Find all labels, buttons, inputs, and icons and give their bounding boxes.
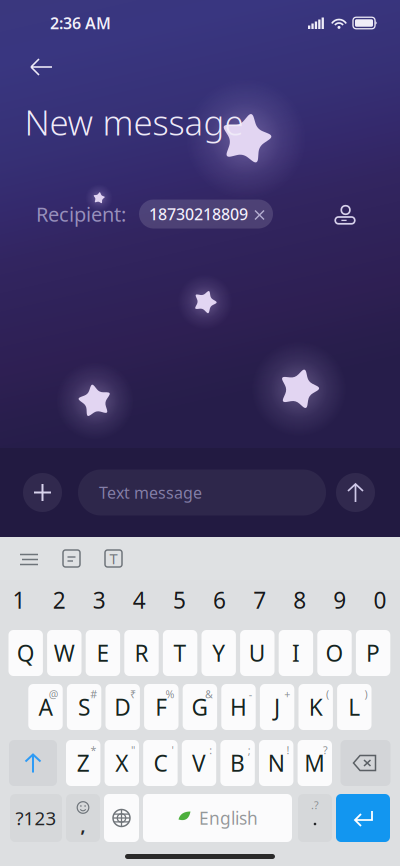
staticText: Y: [212, 638, 225, 668]
staticText: U: [249, 638, 266, 668]
button[interactable]: %: [144, 684, 178, 730]
button[interactable]: 6: [199, 580, 240, 620]
button[interactable]: .?: [298, 794, 332, 842]
staticText: X: [115, 748, 128, 778]
button[interactable]: 3: [79, 580, 119, 620]
staticText: H: [230, 692, 247, 722]
button[interactable]: Text formatting: [8, 541, 49, 575]
button[interactable]: :: [182, 740, 216, 786]
button[interactable]: !: [259, 740, 293, 786]
staticText: S: [78, 692, 90, 722]
button[interactable]: 1: [0, 580, 39, 620]
button[interactable]: Choose contact: [324, 192, 366, 236]
staticText: J: [274, 692, 280, 722]
button[interactable]: Add attachment: [23, 473, 62, 512]
staticText: ?: [323, 743, 328, 757]
button[interactable]: ': [143, 740, 178, 786]
button[interactable]: P: [356, 630, 390, 676]
button[interactable]: 0: [360, 580, 400, 620]
button[interactable]: Back: [18, 45, 64, 89]
staticText: G: [191, 692, 208, 722]
staticText: ,: [80, 814, 85, 837]
button[interactable]: &: [183, 684, 217, 730]
staticText: T: [109, 549, 117, 568]
staticText: Text message: [99, 482, 202, 503]
button[interactable]: Shift: [9, 740, 57, 786]
staticText: !: [286, 743, 289, 757]
button[interactable]: U: [240, 630, 274, 676]
button[interactable]: @: [28, 684, 63, 730]
staticText: &: [205, 687, 213, 701]
staticText: *: [90, 743, 96, 757]
button[interactable]: *: [66, 740, 100, 786]
button[interactable]: E: [86, 630, 120, 676]
button[interactable]: ": [105, 740, 139, 786]
button[interactable]: ;: [220, 740, 255, 786]
button[interactable]: Backspace: [340, 740, 390, 786]
button[interactable]: Change language: [104, 794, 139, 842]
staticText: V: [192, 748, 206, 778]
staticText: I: [292, 638, 300, 668]
staticText: N: [268, 748, 285, 778]
staticText: :: [209, 743, 212, 757]
staticText: L: [348, 692, 360, 722]
staticText: K: [309, 692, 323, 722]
button[interactable]: 8: [280, 580, 320, 620]
button[interactable]: English: [143, 794, 292, 842]
button[interactable]: ₹: [105, 684, 140, 730]
staticText: @: [49, 687, 59, 701]
button[interactable]: I: [279, 630, 313, 676]
button[interactable]: Text message: [78, 469, 326, 515]
staticText: O: [325, 638, 343, 668]
staticText: #: [90, 687, 97, 701]
button[interactable]: ): [337, 684, 371, 730]
button[interactable]: Enter: [336, 794, 390, 842]
staticText: W: [54, 638, 75, 668]
staticText: M: [304, 748, 325, 778]
staticText: ?123: [15, 806, 56, 830]
button[interactable]: T: [163, 630, 197, 676]
button[interactable]: 7: [240, 580, 280, 620]
staticText: English: [199, 806, 258, 829]
staticText: D: [114, 692, 131, 722]
staticText: Z: [77, 748, 90, 778]
staticText: 8: [293, 585, 306, 615]
staticText: P: [366, 638, 380, 668]
button[interactable]: Emoji and comma: [66, 794, 100, 842]
button[interactable]: 18730218809: [139, 199, 273, 228]
button[interactable]: Send: [336, 473, 375, 512]
button[interactable]: Y: [201, 630, 236, 676]
button[interactable]: ?: [298, 740, 332, 786]
staticText: 18730218809: [149, 203, 248, 225]
button[interactable]: R: [124, 630, 159, 676]
button[interactable]: #: [67, 684, 101, 730]
button[interactable]: -: [221, 684, 256, 730]
staticText: 5: [173, 585, 186, 615]
staticText: 4: [133, 585, 146, 615]
button[interactable]: W: [47, 630, 81, 676]
button[interactable]: +: [260, 684, 294, 730]
staticText: E: [96, 638, 109, 668]
button[interactable]: (: [298, 684, 333, 730]
staticText: New message: [24, 99, 243, 145]
staticText: 0: [373, 585, 386, 615]
button[interactable]: Clipboard: [52, 539, 91, 578]
button[interactable]: 5: [159, 580, 199, 620]
staticText: 2: [53, 585, 66, 615]
staticText: -: [249, 687, 252, 701]
button[interactable]: 4: [119, 580, 159, 620]
button[interactable]: ?123: [10, 794, 62, 842]
staticText: Recipient:: [36, 201, 126, 227]
staticText: T: [174, 638, 187, 668]
staticText: +: [284, 687, 290, 701]
button[interactable]: Text mode: [94, 539, 133, 578]
staticText: ': [172, 743, 174, 757]
staticText: ": [131, 743, 135, 757]
button[interactable]: 2: [39, 580, 79, 620]
staticText: 1: [12, 585, 25, 615]
button[interactable]: Q: [8, 630, 43, 676]
staticText: ): [364, 687, 367, 701]
staticText: F: [155, 692, 167, 722]
button[interactable]: O: [317, 630, 352, 676]
button[interactable]: 9: [320, 580, 360, 620]
